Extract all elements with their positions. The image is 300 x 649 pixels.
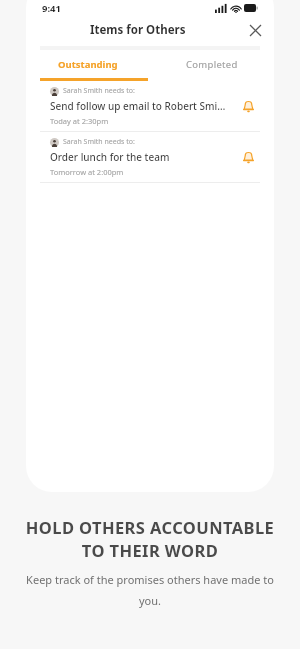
staticText: Outstanding (58, 58, 118, 71)
staticText: Today at 2:30pm (50, 116, 109, 126)
button[interactable]: Sarah Smith needs to: (26, 132, 274, 182)
staticText: Tomorrow at 2:00pm (50, 167, 124, 177)
button[interactable]: Close (244, 19, 266, 41)
staticText: Completed (186, 58, 238, 71)
staticText: Order lunch for the team (50, 150, 170, 164)
staticText: Sarah Smith needs to: (63, 137, 135, 147)
staticText: Items for Others (90, 22, 186, 38)
staticText: Sarah Smith needs to: (63, 86, 135, 96)
button[interactable]: Outstanding (26, 50, 150, 78)
staticText: HOLD OTHERS ACCOUNTABLE TO THEIR WORD (14, 516, 286, 562)
staticText: Keep track of the promises others have m… (26, 572, 274, 608)
button[interactable]: Completed (150, 50, 274, 78)
staticText: 9:41 (42, 2, 61, 15)
staticText: Send follow up email to Robert Smi… (50, 99, 226, 113)
button[interactable]: Remind (236, 94, 260, 118)
button[interactable]: Remind (236, 145, 260, 169)
button[interactable]: Sarah Smith needs to: (26, 81, 274, 131)
